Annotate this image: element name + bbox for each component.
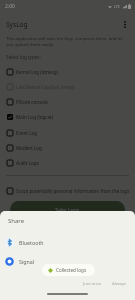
staticText: This application will save the logs, com…: [6, 35, 127, 47]
staticText: Bluetooth: [19, 239, 44, 246]
staticText: Collected logs: [56, 267, 87, 273]
staticText: Select log types:: [6, 54, 41, 60]
staticText: SysLog: [6, 20, 28, 29]
button[interactable]: Main Log (logcat): [0, 110, 135, 124]
staticText: Modem Log: [16, 145, 42, 151]
staticText: LTE: [114, 4, 120, 9]
staticText: PStore console: [16, 99, 48, 105]
staticText: Kernel Log (dmesg): [16, 69, 58, 75]
button[interactable]: Last Kernel Log (last_kmsg): [0, 80, 135, 94]
button[interactable]: Take Logs: [10, 201, 125, 218]
button[interactable]: Event Log: [0, 126, 135, 140]
staticText: Take Logs: [55, 206, 80, 213]
staticText: Scrub potentially personal information f…: [16, 188, 130, 194]
staticText: Always: [112, 280, 126, 286]
staticText: Main Log (logcat): [16, 114, 54, 120]
button[interactable]: Audit Logs: [0, 156, 135, 170]
button[interactable]: Kernel Log (dmesg): [0, 65, 135, 79]
button[interactable]: More options: [117, 16, 133, 32]
staticText: Signal: [19, 258, 35, 265]
staticText: Just once: [83, 280, 102, 286]
button[interactable]: Always: [108, 278, 130, 288]
staticText: Last Kernel Log (last_kmsg): [16, 84, 75, 90]
button[interactable]: Modem Log: [0, 141, 135, 155]
staticText: 2:00: [5, 3, 15, 10]
staticText: Event Log: [16, 130, 38, 136]
staticText: Audit Logs: [16, 160, 39, 166]
button[interactable]: PStore console: [0, 95, 135, 109]
staticText: Share: [8, 217, 25, 225]
button[interactable]: Signal: [0, 252, 135, 271]
button[interactable]: Just once: [79, 278, 106, 288]
button[interactable]: Scrub potentially personal information f…: [0, 184, 135, 198]
button[interactable]: Bluetooth: [0, 233, 135, 252]
